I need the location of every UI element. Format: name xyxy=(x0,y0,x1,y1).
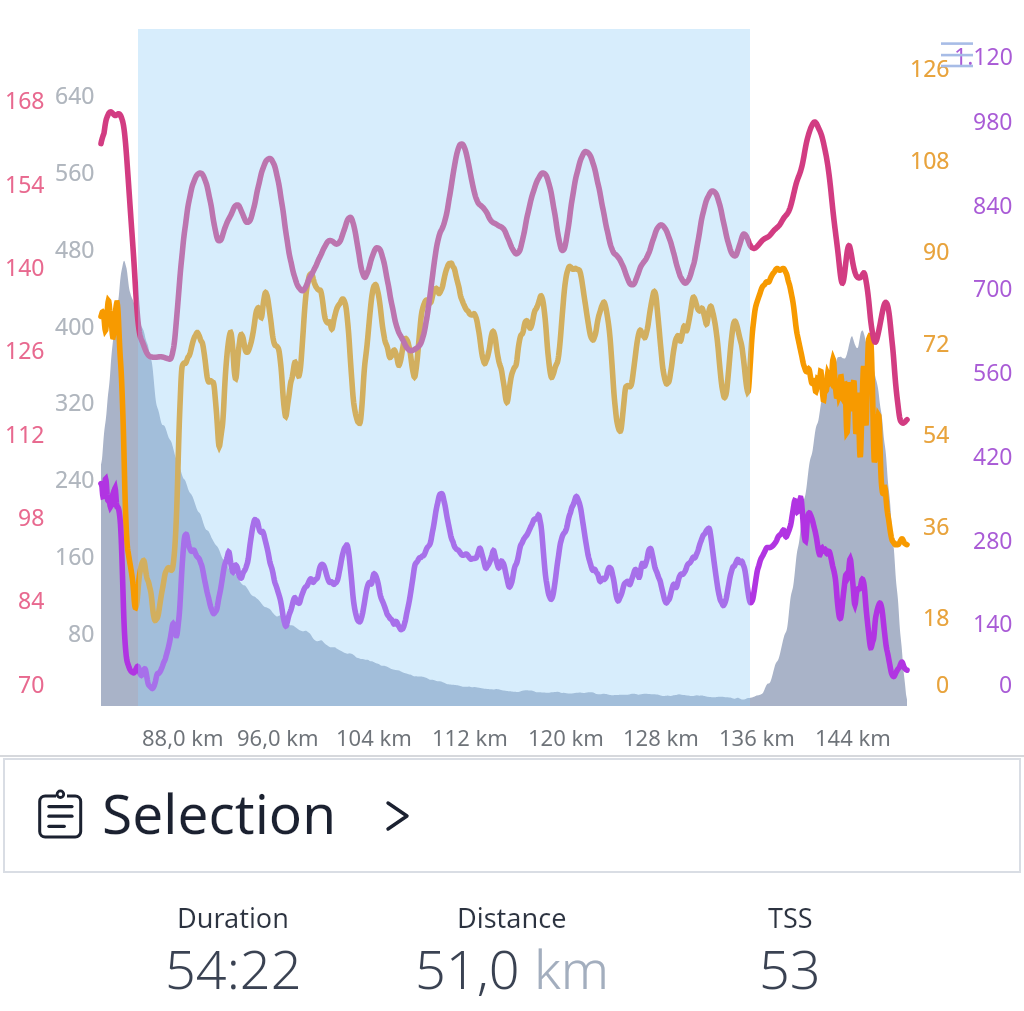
staticText: 51,0 xyxy=(415,931,534,1005)
staticText: 280 xyxy=(973,524,1013,555)
staticText: 168 xyxy=(5,84,45,115)
staticText: 0 xyxy=(936,668,950,699)
staticText: 560 xyxy=(973,356,1013,387)
staticText: 160 xyxy=(55,540,95,571)
staticText: 18 xyxy=(923,601,950,632)
staticText: 136 km xyxy=(719,722,795,752)
staticText: 36 xyxy=(923,510,950,541)
staticText: 140 xyxy=(973,607,1013,638)
staticText: km xyxy=(534,931,609,1005)
other: Chart legend xyxy=(941,40,975,70)
staticText: 96,0 km xyxy=(237,722,319,752)
staticText: 70 xyxy=(18,668,45,699)
staticText: 320 xyxy=(55,386,95,417)
staticText: Selection xyxy=(102,775,337,850)
staticText: 144 km xyxy=(815,722,891,752)
staticText: 80 xyxy=(68,617,95,648)
staticText: Distance xyxy=(457,899,567,936)
staticText: 128 km xyxy=(623,722,699,752)
staticText: 53 xyxy=(759,931,821,1005)
staticText: 126 xyxy=(5,334,45,365)
staticText: 120 km xyxy=(528,722,604,752)
staticText: 840 xyxy=(973,189,1013,220)
staticText: 0 xyxy=(999,668,1013,699)
staticText: 72 xyxy=(923,327,950,358)
staticText: 112 xyxy=(5,418,45,449)
staticText: 84 xyxy=(18,584,45,615)
staticText: Duration xyxy=(177,899,289,936)
staticText: 126 xyxy=(910,52,950,83)
staticText: 90 xyxy=(923,235,950,266)
staticText: 140 xyxy=(5,251,45,282)
staticText: 112 km xyxy=(432,722,508,752)
staticText: 420 xyxy=(973,440,1013,471)
staticText: 98 xyxy=(18,501,45,532)
staticText: TSS xyxy=(768,899,813,936)
staticText: 560 xyxy=(55,156,95,187)
staticText: 980 xyxy=(973,105,1013,136)
button[interactable]: Selection xyxy=(3,758,1021,873)
staticText: 154 xyxy=(5,168,45,199)
staticText: 640 xyxy=(55,79,95,110)
staticText: 480 xyxy=(55,233,95,264)
staticText: 54:22 xyxy=(165,931,302,1005)
staticText: 240 xyxy=(55,463,95,494)
staticText: 54 xyxy=(923,418,950,449)
staticText: 108 xyxy=(910,144,950,175)
staticText: 104 km xyxy=(336,722,412,752)
staticText: 400 xyxy=(55,310,95,341)
staticText: 1.120 xyxy=(954,40,1013,71)
staticText: 700 xyxy=(973,272,1013,303)
staticText: 88,0 km xyxy=(142,722,224,752)
